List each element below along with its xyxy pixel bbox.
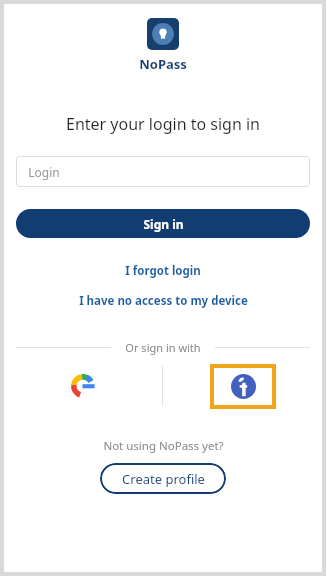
staticText: Enter your login to sign in — [66, 113, 260, 135]
button[interactable]: Sign in with Facebook — [214, 368, 272, 405]
staticText: Create profile — [122, 470, 205, 488]
staticText: I have no access to my device — [79, 293, 248, 309]
staticText: Or sign in with — [125, 340, 201, 355]
button[interactable]: Login — [16, 156, 310, 187]
staticText: Login — [28, 164, 60, 180]
staticText: I forgot login — [125, 263, 201, 279]
button[interactable]: Sign in — [16, 209, 310, 238]
button[interactable]: Sign in with Google — [63, 366, 103, 406]
staticText: Not using NoPass yet? — [103, 438, 224, 454]
staticText: Sign in — [143, 216, 184, 232]
button[interactable]: Create profile — [100, 463, 226, 494]
staticText: NoPass — [139, 55, 187, 73]
button[interactable]: I forgot login — [117, 260, 209, 282]
button[interactable]: I have no access to my device — [71, 290, 256, 312]
